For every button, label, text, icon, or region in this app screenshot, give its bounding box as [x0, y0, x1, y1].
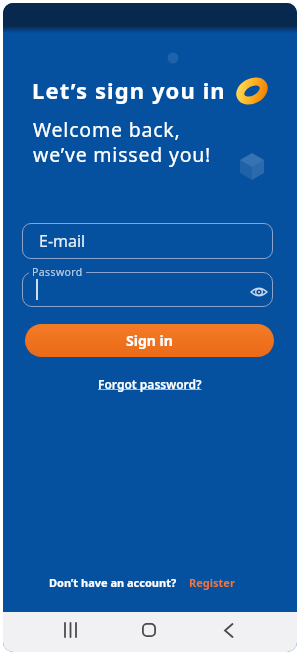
button[interactable] — [22, 272, 273, 307]
button[interactable]: Forgot password? — [98, 376, 202, 392]
button[interactable]: Register — [189, 575, 235, 590]
staticText: Forgot password? — [98, 376, 202, 392]
staticText: Welcome back, we’ve missed you! — [33, 116, 212, 168]
button[interactable] — [209, 612, 249, 652]
button[interactable] — [51, 612, 91, 652]
button[interactable]: Sign in — [25, 324, 274, 357]
button[interactable] — [129, 612, 169, 652]
staticText: Password — [32, 265, 83, 279]
staticText: Sign in — [126, 331, 173, 350]
button[interactable]: E-mail — [22, 223, 273, 259]
staticText: E-mail — [39, 230, 86, 252]
staticText: Register — [189, 575, 235, 590]
staticText: Don’t have an account? — [49, 575, 177, 590]
staticText: Let’s sign you in — [32, 75, 226, 105]
